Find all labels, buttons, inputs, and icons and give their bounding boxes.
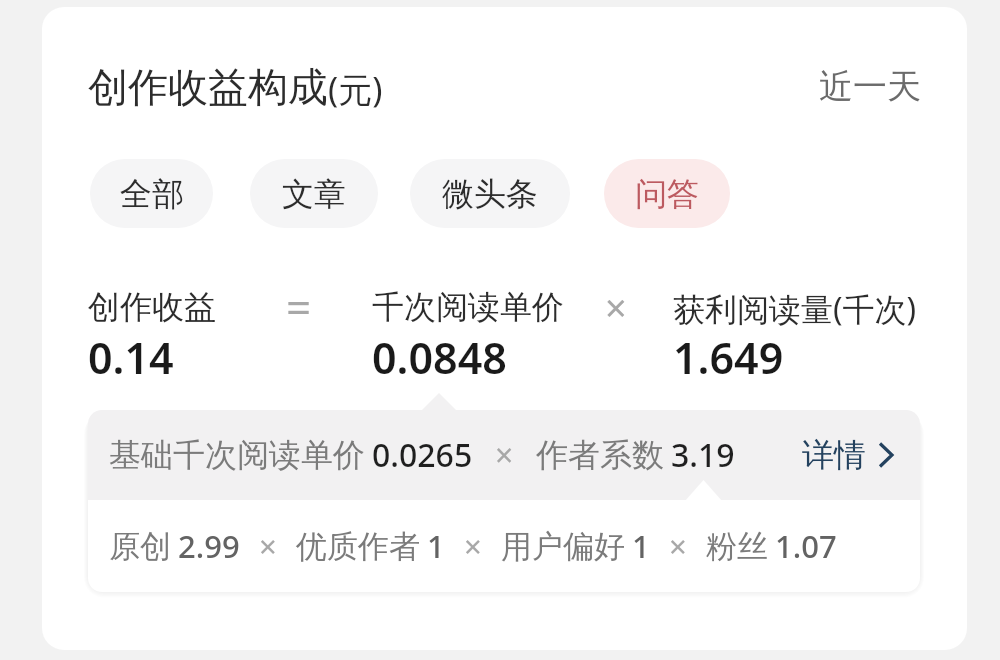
staticText: 1 <box>632 525 650 567</box>
staticText: 作者系数 <box>536 435 664 475</box>
staticText: 基础千次阅读单价 <box>109 435 365 475</box>
staticText: 原创 <box>109 527 171 566</box>
staticText: 1 <box>427 525 445 567</box>
staticText: 详情 <box>802 435 866 475</box>
staticText: 0.0848 <box>372 328 507 387</box>
staticText: 2.99 <box>178 525 240 567</box>
staticText: × <box>495 433 514 477</box>
staticText: 优质作者 <box>296 527 420 566</box>
button[interactable]: 微头条 <box>410 159 570 228</box>
staticText: 创作收益构成 <box>88 62 328 112</box>
staticText: 文章 <box>282 174 346 214</box>
staticText: 3.19 <box>671 433 735 477</box>
staticText: 千次阅读单价 <box>372 287 564 327</box>
staticText: × <box>464 525 482 567</box>
staticText: × <box>259 525 277 567</box>
button[interactable]: 详情 <box>788 410 908 500</box>
staticText: 问答 <box>635 174 699 214</box>
staticText: (元) <box>328 66 383 112</box>
staticText: 0.0265 <box>372 433 473 477</box>
staticText: 创作收益 <box>88 287 216 327</box>
button[interactable]: 近一天 <box>807 55 933 118</box>
button[interactable]: 文章 <box>250 159 378 228</box>
staticText: 近一天 <box>819 65 921 108</box>
staticText: 微头条 <box>442 174 538 214</box>
staticText: × <box>669 525 687 567</box>
staticText: 用户偏好 <box>501 527 625 566</box>
staticText: 1.07 <box>775 525 837 567</box>
other: 查看详情 <box>878 442 894 468</box>
staticText: 粉丝 <box>706 527 768 566</box>
staticText: × <box>605 281 627 333</box>
button[interactable]: 问答 <box>604 159 730 228</box>
staticText: 获利阅读量(千次) <box>673 287 917 331</box>
staticText: 1.649 <box>673 328 784 387</box>
staticText: = <box>286 277 312 337</box>
staticText: 0.14 <box>88 328 174 387</box>
button[interactable]: 全部 <box>90 159 213 228</box>
staticText: 全部 <box>120 174 184 214</box>
